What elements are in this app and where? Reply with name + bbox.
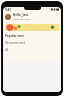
- staticText: Good morning: [13, 17, 31, 20]
- staticText: Hello, Jess: [13, 13, 29, 17]
- staticText: 9:41: [5, 8, 11, 12]
- staticText: All: [5, 48, 9, 52]
- button[interactable]: [5, 24, 59, 31]
- staticText: Popular now: [5, 34, 24, 38]
- staticText: Recommended: [5, 41, 25, 45]
